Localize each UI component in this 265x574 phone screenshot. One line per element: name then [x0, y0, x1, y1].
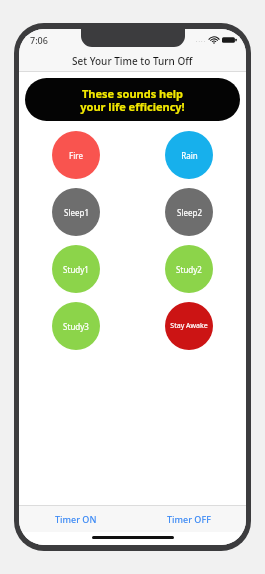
staticText: Study3	[63, 321, 89, 332]
staticText: Timer OFF	[167, 513, 211, 525]
staticText: Timer ON	[55, 513, 97, 525]
button[interactable]: Study1	[52, 245, 100, 293]
staticText: Study2	[176, 264, 202, 275]
button[interactable]: Fire	[52, 131, 100, 179]
staticText: Stay Awake	[170, 321, 208, 331]
button[interactable]: Timer OFF	[132, 506, 246, 532]
button[interactable]: Timer ON	[19, 506, 132, 532]
staticText: These sounds help your life efficiency!	[80, 86, 185, 114]
staticText: Fire	[69, 150, 83, 161]
other: Home indicator	[92, 536, 174, 539]
staticText: 7:06	[30, 34, 48, 46]
button[interactable]: Study2	[165, 245, 213, 293]
button[interactable]: Sleep2	[165, 188, 213, 236]
button[interactable]: Rain	[165, 131, 213, 179]
staticText: Set Your Time to Turn Off	[72, 54, 193, 68]
button[interactable]: Study3	[52, 302, 100, 350]
staticText: Study1	[63, 264, 89, 275]
button[interactable]: Sleep1	[52, 188, 100, 236]
staticText: Sleep2	[177, 207, 202, 218]
staticText: Sleep1	[64, 207, 89, 218]
staticText: Rain	[181, 150, 198, 161]
button[interactable]: Stay Awake	[165, 302, 213, 350]
